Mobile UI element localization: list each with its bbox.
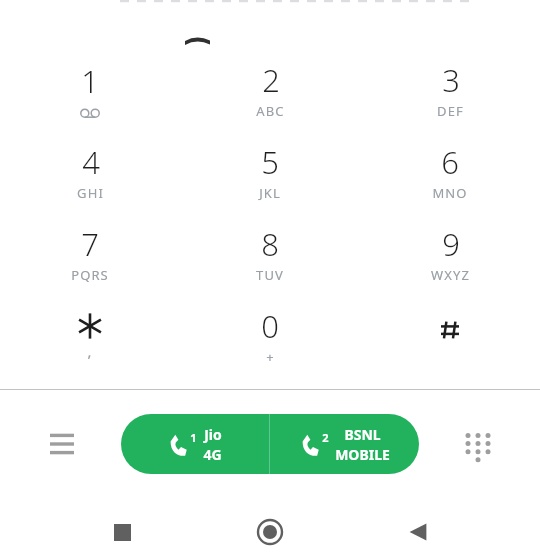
button[interactable]: 6 (360, 132, 540, 214)
staticText: GHI (77, 184, 104, 202)
staticText: 4 (82, 141, 100, 183)
button[interactable] (0, 4, 540, 50)
staticText: 5 (261, 141, 279, 183)
staticText: + (266, 348, 275, 366)
staticText: 3 (442, 59, 460, 101)
staticText: 7 (81, 223, 99, 265)
staticText: MOBILE (335, 445, 390, 464)
button[interactable]: 3 (360, 50, 540, 132)
button[interactable]: Pound (360, 296, 540, 378)
staticText: ABC (256, 102, 285, 120)
button[interactable]: Home (244, 506, 296, 558)
button[interactable]: 1 (121, 414, 269, 474)
button[interactable]: Star (0, 296, 180, 378)
button[interactable]: Menu (32, 414, 92, 474)
button[interactable]: 8 (180, 214, 360, 296)
button[interactable]: Back (392, 506, 444, 558)
button[interactable]: Recent apps (96, 506, 148, 558)
staticText: , (87, 341, 93, 361)
staticText: WXYZ (431, 266, 470, 284)
staticText: MNO (432, 184, 468, 202)
staticText: 2 (322, 430, 329, 445)
button[interactable]: 1 (0, 50, 180, 132)
staticText: 8 (261, 223, 279, 265)
staticText: 2 (262, 59, 280, 101)
staticText: BSNL (344, 425, 381, 444)
staticText: 4G (203, 445, 222, 464)
button[interactable]: 0 (180, 296, 360, 378)
staticText: PQRS (71, 266, 109, 284)
button[interactable]: 7 (0, 214, 180, 296)
button[interactable]: Dialpad (448, 414, 508, 474)
staticText: JKL (259, 184, 281, 202)
button[interactable]: 5 (180, 132, 360, 214)
button[interactable]: 2 (180, 50, 360, 132)
staticText: 1 (81, 60, 99, 102)
button[interactable]: 9 (360, 214, 540, 296)
staticText: 9 (442, 223, 460, 265)
staticText: 6 (441, 141, 459, 183)
staticText: 1 (190, 430, 197, 445)
button[interactable]: 2 (270, 414, 419, 474)
button[interactable]: 4 (0, 132, 180, 214)
staticText: Jio (204, 425, 222, 444)
staticText: DEF (437, 102, 464, 120)
staticText: TUV (256, 266, 284, 284)
staticText: 0 (261, 305, 279, 347)
